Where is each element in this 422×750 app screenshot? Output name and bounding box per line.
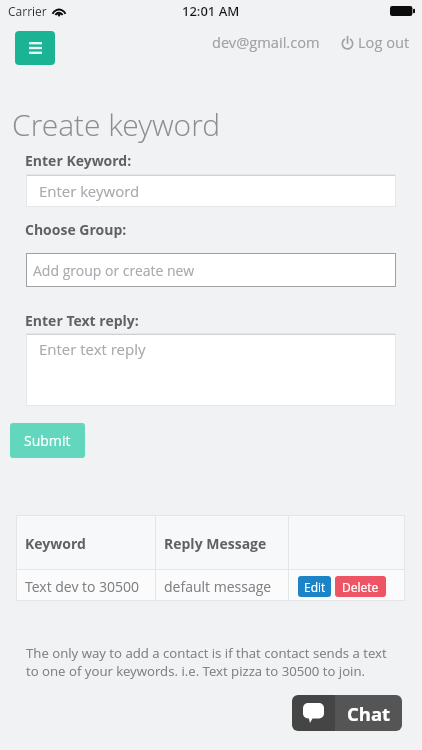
button[interactable]: Add group or create new <box>26 253 396 287</box>
button[interactable]: Enter keyword <box>26 174 396 207</box>
staticText: Submit <box>24 431 71 450</box>
staticText: Log out <box>358 32 410 52</box>
staticText: Text dev to 30500 <box>25 577 140 596</box>
button[interactable]: Delete <box>335 576 386 597</box>
button[interactable]: Chat <box>292 695 402 731</box>
staticText: Enter Text reply: <box>25 311 139 330</box>
button[interactable]: Enter text reply <box>26 333 396 406</box>
button[interactable]: Menu <box>15 31 55 65</box>
staticText: Create keyword <box>12 104 221 145</box>
other: Chat <box>292 695 335 731</box>
staticText: The only way to add a contact is if that… <box>26 644 421 680</box>
button[interactable]: Edit <box>298 576 331 597</box>
staticText: Enter keyword <box>39 181 140 201</box>
staticText: Carrier <box>8 3 47 19</box>
button[interactable]: dev@gmail.com <box>212 32 320 52</box>
staticText: Edit <box>304 579 326 595</box>
staticText: default message <box>164 577 272 596</box>
staticText: Keyword <box>25 534 86 553</box>
staticText: Enter Keyword: <box>25 151 132 170</box>
staticText: Enter text reply <box>39 339 146 359</box>
staticText: Choose Group: <box>25 220 127 239</box>
staticText: 12:01 AM <box>182 2 240 20</box>
staticText: Chat <box>347 701 391 726</box>
staticText: Reply Message <box>164 534 267 553</box>
button[interactable]: Submit <box>10 423 85 458</box>
button[interactable]: Log out <box>341 32 410 52</box>
staticText: Add group or create new <box>33 261 195 280</box>
staticText: Delete <box>342 579 379 595</box>
